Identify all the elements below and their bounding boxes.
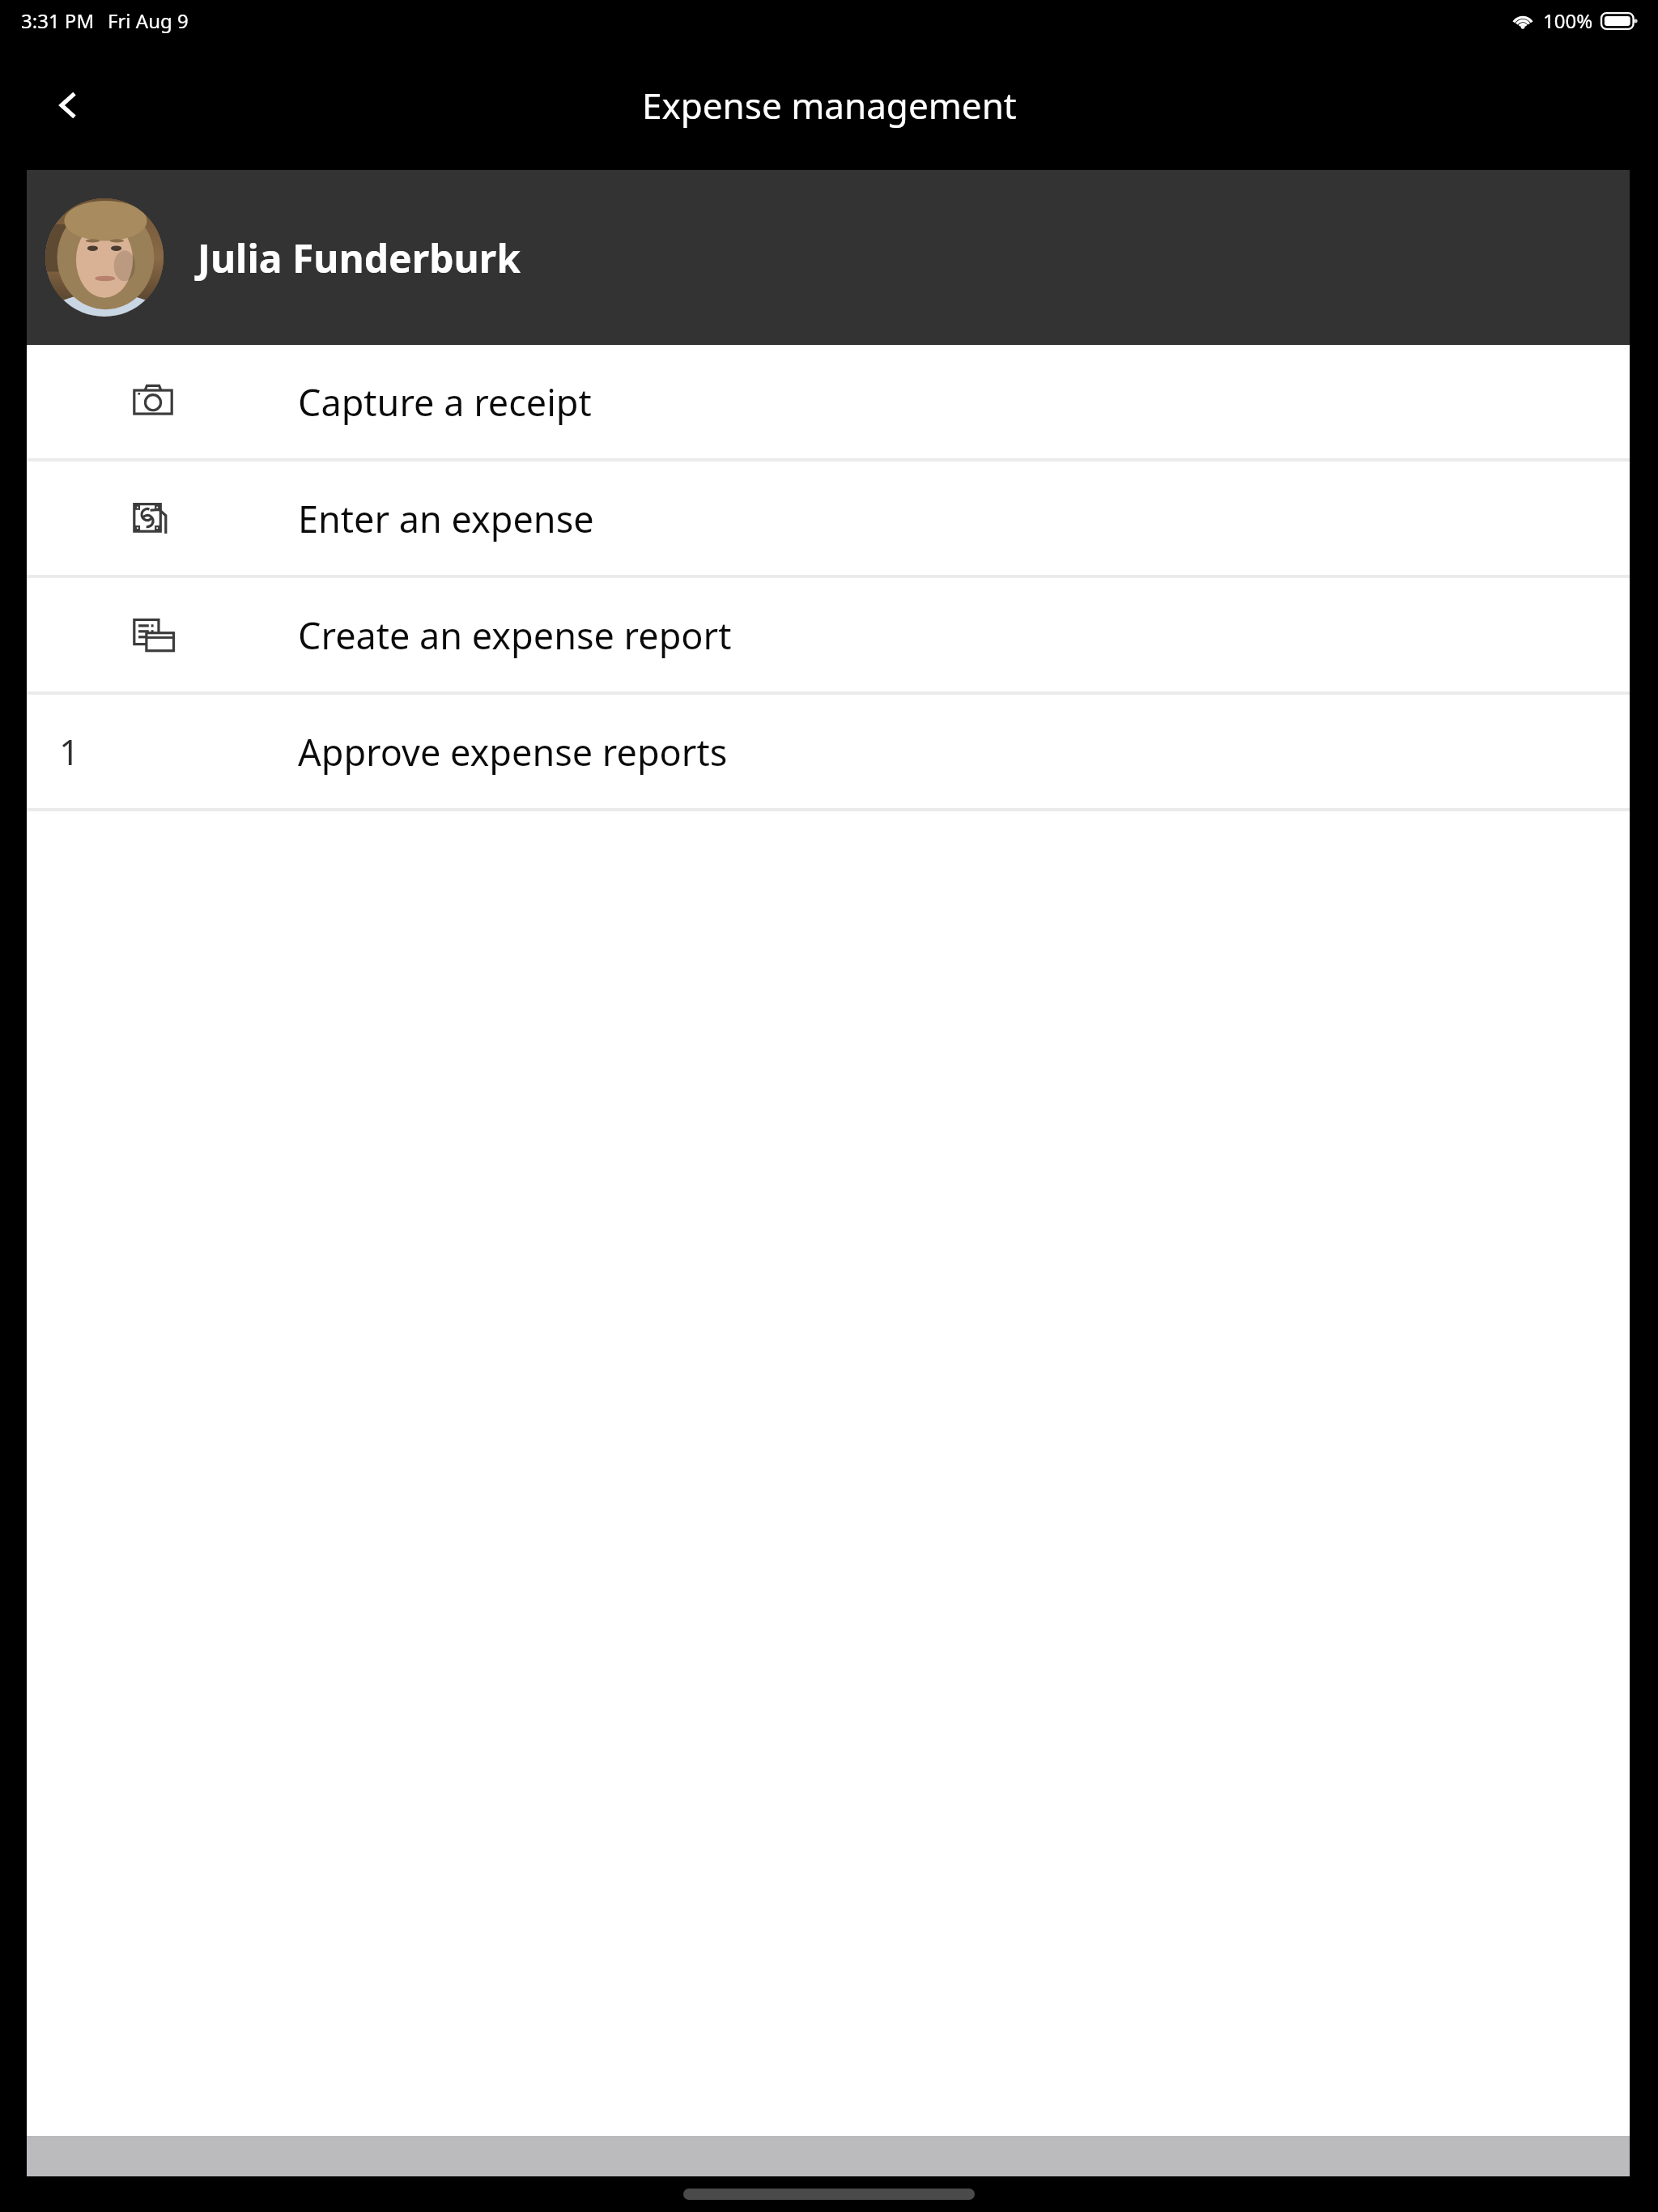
button[interactable]: Create an expense report [27,578,1630,691]
staticText: Approve expense reports [298,727,728,776]
button[interactable]: 1 [27,695,1630,808]
staticText: 1 [59,727,80,776]
staticText: 100% [1543,7,1593,34]
staticText: Capture a receipt [298,377,592,427]
staticText: Fri Aug 9 [108,7,189,34]
staticText: Create an expense report [298,610,732,660]
staticText: Julia Funderburk [198,232,521,284]
staticText: 3:31 PM [21,7,95,34]
staticText: Expense management [642,81,1017,130]
button[interactable]: Back [31,68,105,143]
staticText: Enter an expense [298,494,594,543]
button[interactable]: Capture a receipt [27,345,1630,458]
button[interactable]: Enter an expense [27,462,1630,575]
button[interactable]: Julia Funderburk [27,170,1630,345]
